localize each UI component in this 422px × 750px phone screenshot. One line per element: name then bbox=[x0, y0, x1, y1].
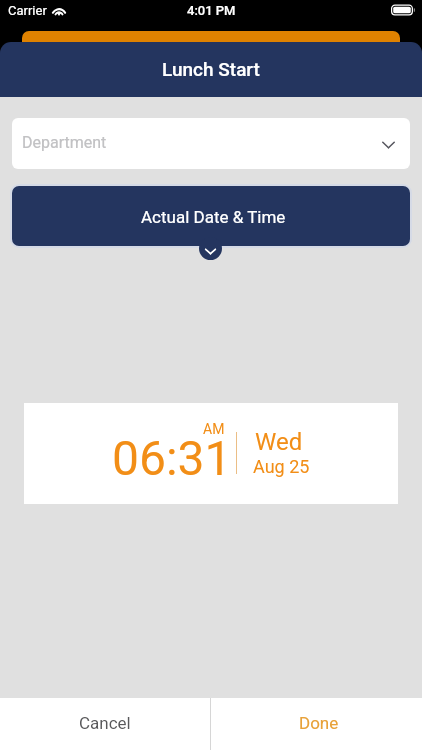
staticText: Aug 25 bbox=[253, 456, 310, 477]
staticText: Cancel bbox=[79, 713, 131, 733]
button[interactable]: Actual Date & Time bbox=[12, 186, 410, 246]
staticText: Carrier bbox=[8, 3, 47, 18]
button[interactable]: Cancel bbox=[0, 698, 210, 750]
button[interactable]: Department bbox=[12, 118, 410, 169]
button[interactable]: Expand bbox=[199, 237, 222, 260]
staticText: Done bbox=[299, 713, 339, 733]
staticText: 06:31 bbox=[112, 430, 232, 486]
staticText: 4:01 PM bbox=[187, 3, 236, 18]
staticText: Actual Date & Time bbox=[141, 207, 286, 227]
staticText: Department bbox=[22, 133, 107, 152]
staticText: Wed bbox=[255, 428, 303, 456]
button[interactable]: Done bbox=[211, 698, 422, 750]
staticText: Lunch Start bbox=[162, 58, 260, 80]
staticText: AM bbox=[203, 421, 225, 437]
